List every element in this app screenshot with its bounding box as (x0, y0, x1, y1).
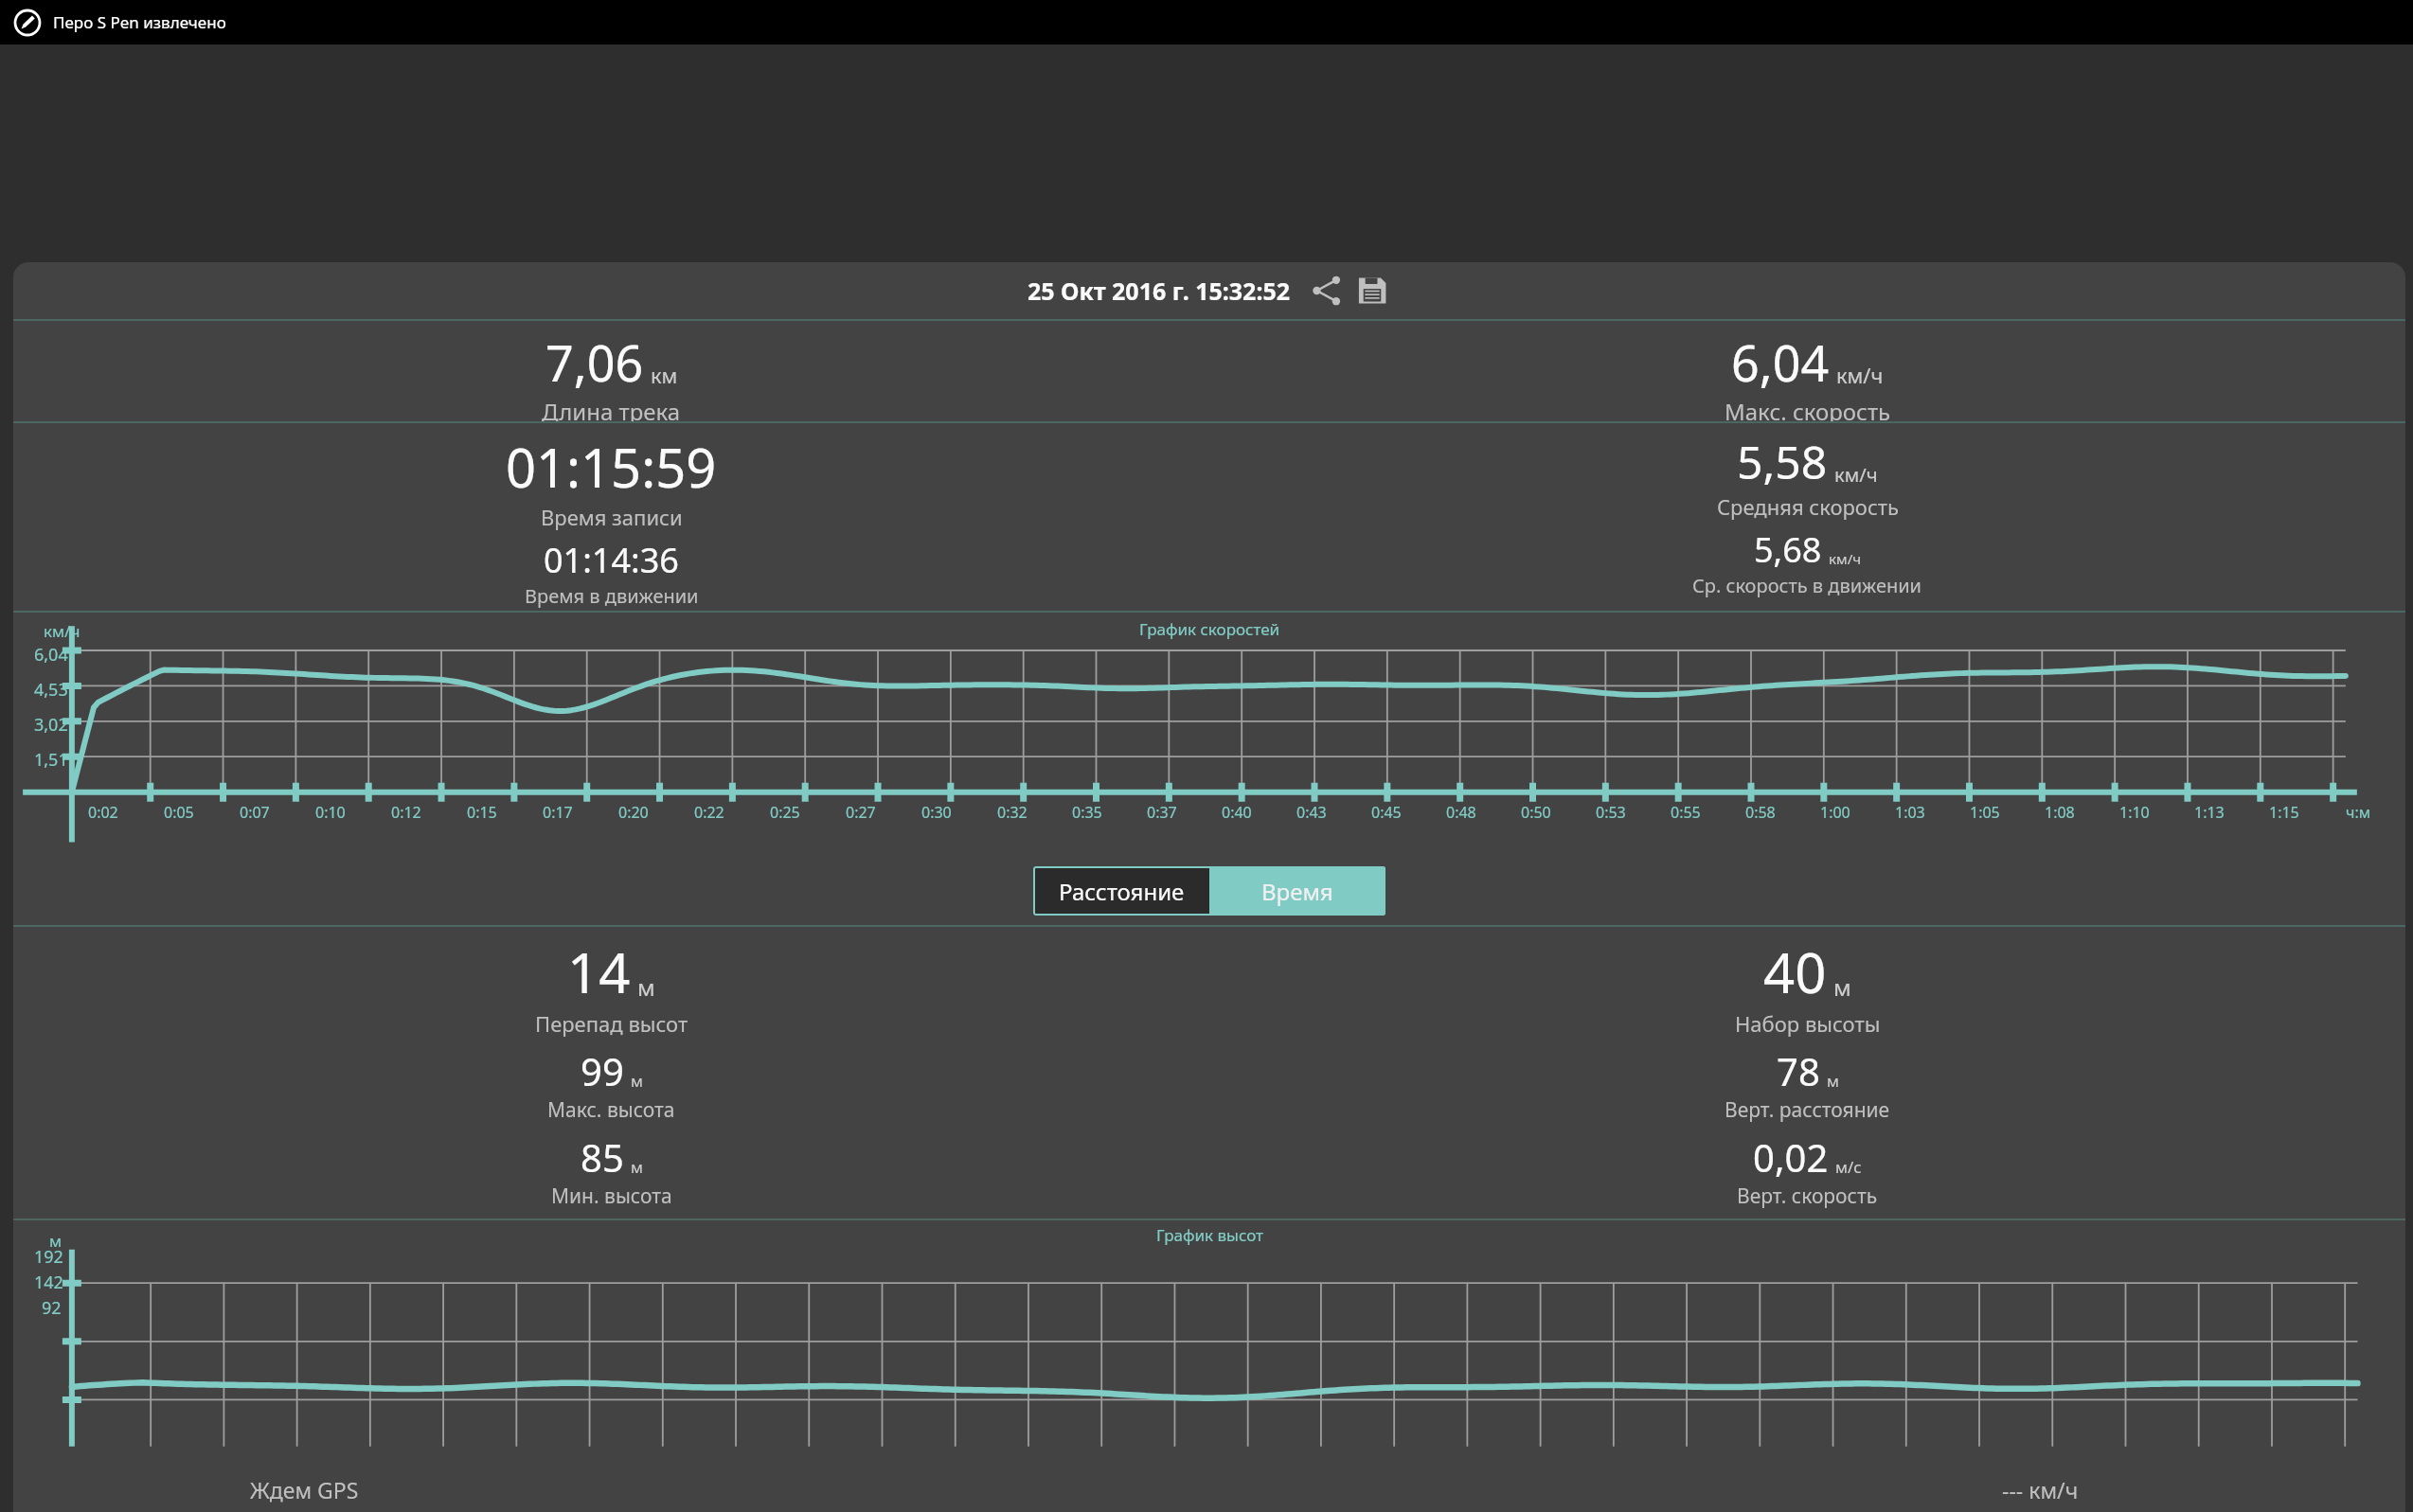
staticText: м (637, 971, 655, 1003)
staticText: Верт. скорость (1737, 1183, 1878, 1210)
staticText: 1:03 (1895, 802, 1925, 823)
staticText: 0:15 (467, 802, 497, 823)
staticText: 25 Окт 2016 г. 15:32:52 (1028, 275, 1291, 307)
staticText: 01:14:36 (544, 537, 679, 583)
button[interactable]: Save (1353, 272, 1391, 310)
staticText: 0:45 (1371, 802, 1402, 823)
button[interactable]: Время (1209, 866, 1385, 916)
staticText: 3,02 (34, 713, 68, 737)
staticText: Перепад высот (535, 1009, 688, 1038)
staticText: 4,53 (34, 678, 68, 702)
staticText: 14 (567, 934, 631, 1009)
staticText: м (1827, 1070, 1839, 1092)
staticText: 142 (34, 1271, 63, 1294)
staticText: 0:58 (1745, 802, 1776, 823)
staticText: --- км/ч (2002, 1475, 2079, 1504)
staticText: Время (1261, 876, 1333, 907)
staticText: 0,02 (1753, 1131, 1829, 1183)
staticText: 0:22 (694, 802, 724, 823)
staticText: 6,04 (34, 643, 68, 667)
staticText: 5,68 (1754, 526, 1822, 573)
staticText: 0:55 (1671, 802, 1701, 823)
staticText: км/ч (44, 620, 80, 642)
staticText: км/ч (1836, 362, 1884, 390)
staticText: 0:02 (88, 802, 118, 823)
staticText: 85 (581, 1131, 624, 1183)
staticText: 0:25 (770, 802, 800, 823)
staticText: 1:08 (2045, 802, 2075, 823)
staticText: км/ч (1834, 461, 1878, 487)
staticText: Длина трека (542, 396, 681, 421)
staticText: 0:10 (315, 802, 346, 823)
staticText: 1:00 (1820, 802, 1850, 823)
staticText: 7,06 (545, 329, 644, 396)
staticText: 0:27 (846, 802, 876, 823)
staticText: Ср. скорость в движении (1692, 573, 1922, 598)
staticText: 1:05 (1970, 802, 2000, 823)
staticText: 0:35 (1072, 802, 1102, 823)
staticText: Макс. скорость (1725, 396, 1891, 421)
staticText: м/с (1835, 1156, 1862, 1178)
staticText: 0:37 (1147, 802, 1177, 823)
staticText: 0:48 (1446, 802, 1476, 823)
staticText: Средняя скорость (1717, 492, 1899, 521)
button[interactable]: Share (1308, 272, 1346, 310)
staticText: 1,51 (34, 748, 68, 772)
staticText: 6,04 (1731, 329, 1830, 396)
button[interactable]: Расстояние (1033, 866, 1209, 916)
staticText: 01:15:59 (506, 431, 717, 503)
staticText: 0:20 (618, 802, 649, 823)
staticText: Время записи (541, 503, 683, 531)
staticText: Набор высоты (1735, 1009, 1881, 1038)
staticText: 0:05 (164, 802, 194, 823)
staticText: 0:32 (997, 802, 1028, 823)
staticText: Ждем GPS (250, 1475, 359, 1504)
staticText: Время в движении (525, 583, 699, 609)
staticText: м (49, 1230, 63, 1252)
staticText: м (1833, 971, 1851, 1003)
staticText: 1:13 (2194, 802, 2225, 823)
staticText: 78 (1777, 1045, 1820, 1096)
staticText: 0:53 (1596, 802, 1626, 823)
staticText: 0:30 (921, 802, 952, 823)
staticText: Макс. высота (547, 1096, 675, 1124)
staticText: График скоростей (1139, 618, 1280, 640)
staticText: 92 (42, 1296, 62, 1320)
staticText: 0:12 (391, 802, 421, 823)
staticText: м (631, 1156, 643, 1178)
staticText: Верт. расстояние (1725, 1096, 1890, 1124)
staticText: Мин. высота (551, 1183, 672, 1210)
staticText: 192 (34, 1245, 63, 1269)
staticText: км/ч (1829, 549, 1862, 569)
staticText: км (651, 362, 678, 390)
staticText: Расстояние (1059, 876, 1185, 907)
staticText: 0:40 (1222, 802, 1252, 823)
staticText: 0:50 (1521, 802, 1551, 823)
staticText: 0:07 (240, 802, 270, 823)
staticText: График высот (1156, 1224, 1263, 1246)
staticText: Перо S Pen извлечено (53, 11, 226, 33)
staticText: 1:10 (2119, 802, 2150, 823)
staticText: 1:15 (2269, 802, 2299, 823)
staticText: м (631, 1070, 643, 1092)
staticText: 0:17 (543, 802, 573, 823)
staticText: ч:м (2346, 802, 2371, 823)
staticText: 99 (581, 1045, 624, 1096)
staticText: 5,58 (1737, 431, 1828, 492)
staticText: 0:43 (1296, 802, 1327, 823)
staticText: 40 (1763, 934, 1827, 1009)
